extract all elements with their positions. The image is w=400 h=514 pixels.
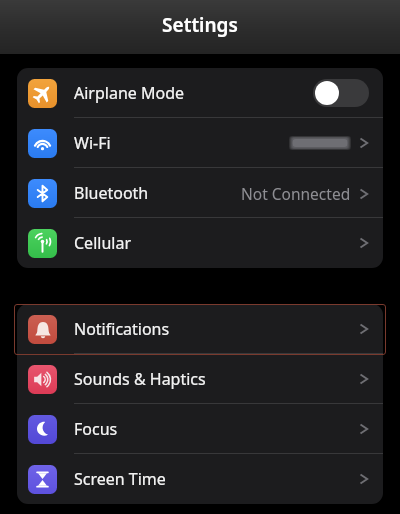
button[interactable]: Cellular bbox=[17, 218, 383, 268]
button[interactable]: Wi-Fi bbox=[17, 118, 383, 168]
staticText: Airplane Mode bbox=[74, 82, 313, 104]
other: Open bbox=[359, 421, 369, 437]
button[interactable]: Screen Time bbox=[17, 454, 383, 504]
other: Open bbox=[359, 471, 369, 487]
staticText: Notifications bbox=[74, 318, 359, 340]
staticText: Settings bbox=[162, 12, 238, 38]
staticText: Sounds & Haptics bbox=[74, 368, 359, 390]
button[interactable]: Sounds & Haptics bbox=[17, 354, 383, 404]
button[interactable]: Focus bbox=[17, 404, 383, 454]
button[interactable]: Notifications bbox=[17, 304, 383, 354]
staticText: Focus bbox=[74, 418, 359, 440]
staticText: Screen Time bbox=[74, 468, 359, 490]
other: Open bbox=[359, 321, 369, 337]
staticText: Cellular bbox=[74, 232, 359, 254]
other: Open bbox=[359, 186, 369, 202]
button[interactable]: Airplane Mode toggle bbox=[313, 79, 369, 107]
other: Open bbox=[359, 135, 369, 151]
button[interactable]: Airplane Mode bbox=[17, 68, 383, 118]
button[interactable]: Bluetooth bbox=[17, 168, 383, 218]
other: Open bbox=[359, 235, 369, 251]
staticText: Not Connected bbox=[241, 183, 351, 204]
staticText: Wi-Fi bbox=[74, 132, 289, 154]
staticText: Bluetooth bbox=[74, 182, 241, 204]
other: Open bbox=[359, 371, 369, 387]
